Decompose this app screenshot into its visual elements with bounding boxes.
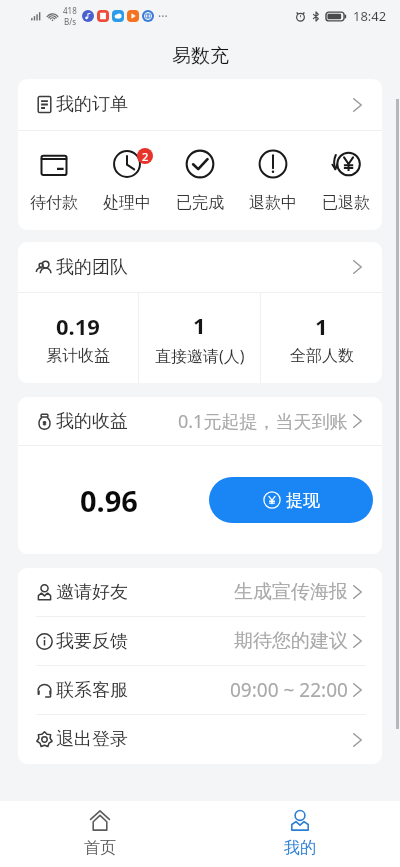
button[interactable]: 待付款 xyxy=(18,131,90,230)
staticText: 1 xyxy=(193,310,206,340)
staticText: 0.96 xyxy=(80,481,138,520)
staticText: 我的 xyxy=(284,838,316,858)
staticText: 生成宣传海报 xyxy=(234,580,348,604)
staticText: 退出登录 xyxy=(56,728,128,751)
staticText: 待付款 xyxy=(30,193,78,213)
button[interactable]: 退款中 xyxy=(236,131,309,230)
staticText: 期待您的建议 xyxy=(234,629,348,653)
staticText: 联系客服 xyxy=(56,679,128,702)
button[interactable]: 1 xyxy=(261,293,382,383)
staticText: 全部人数 xyxy=(290,346,354,366)
button[interactable]: 我的收益 xyxy=(18,397,382,445)
staticText: 退款中 xyxy=(249,193,297,213)
staticText: B/s xyxy=(64,16,77,27)
button[interactable]: 我的 xyxy=(200,801,400,867)
staticText: 已完成 xyxy=(176,193,224,213)
button[interactable]: 已退款 xyxy=(309,131,382,230)
button[interactable]: 已完成 xyxy=(163,131,236,230)
button[interactable]: 我要反馈 xyxy=(18,617,382,665)
staticText: 我的收益 xyxy=(56,410,128,433)
staticText: 累计收益 xyxy=(46,346,110,366)
staticText: 首页 xyxy=(84,838,116,858)
staticText: 18:42 xyxy=(353,7,387,25)
staticText: 处理中 xyxy=(103,193,151,213)
staticText: 我的团队 xyxy=(56,256,128,279)
button[interactable]: 我的订单 xyxy=(18,79,382,130)
staticText: ··· xyxy=(158,8,168,24)
button[interactable]: 我的团队 xyxy=(18,242,382,292)
staticText: 已退款 xyxy=(322,193,370,213)
staticText: 我要反馈 xyxy=(56,630,128,653)
button[interactable]: 提现 xyxy=(209,477,373,523)
button[interactable]: 首页 xyxy=(0,801,200,867)
button[interactable]: 联系客服 xyxy=(18,666,382,714)
staticText: 我的订单 xyxy=(56,93,128,116)
staticText: 0.19 xyxy=(56,311,100,341)
staticText: 邀请好友 xyxy=(56,581,128,604)
staticText: 1 xyxy=(315,311,328,341)
button[interactable]: 0.19 xyxy=(18,293,138,383)
staticText: 易数充 xyxy=(172,44,229,68)
staticText: 0.1元起提，当天到账 xyxy=(178,409,348,434)
button[interactable]: 邀请好友 xyxy=(18,568,382,616)
staticText: 直接邀请(人) xyxy=(155,345,245,367)
staticText: 2 xyxy=(142,149,149,164)
button[interactable]: 退出登录 xyxy=(18,715,382,764)
button[interactable]: 1 xyxy=(139,293,260,383)
staticText: 09:00 ~ 22:00 xyxy=(230,677,348,703)
staticText: 418 xyxy=(63,5,77,16)
button[interactable]: 2 xyxy=(90,131,163,230)
staticText: 提现 xyxy=(286,490,320,511)
